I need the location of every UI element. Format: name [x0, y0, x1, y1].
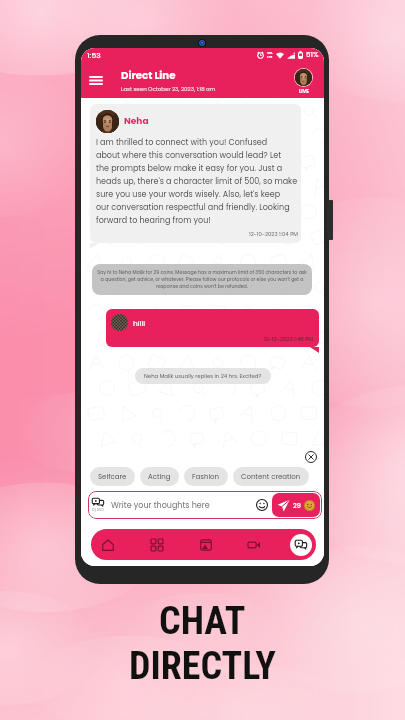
button[interactable]: Fashion: [184, 467, 228, 486]
button[interactable]: Emoji: [256, 499, 268, 511]
staticText: VoL: [267, 51, 273, 55]
staticText: 12-10-2023 1:04 PM: [249, 230, 298, 238]
button[interactable]: Live profile: [294, 68, 313, 95]
staticText: hiiii: [133, 318, 146, 328]
button[interactable]: Close: [305, 451, 317, 463]
staticText: CHAT: [159, 599, 246, 644]
staticText: Write your thoughts here: [111, 500, 256, 511]
staticText: Fashion: [192, 472, 220, 482]
button[interactable]: Video: [241, 532, 267, 558]
staticText: I am thrilled to connect with you! Confu…: [96, 137, 298, 226]
button[interactable]: Neha Malik usually replies in 24 hrs. Ex…: [135, 368, 271, 384]
button[interactable]: Send: [272, 493, 320, 517]
button[interactable]: Content creation: [233, 467, 309, 486]
staticText: Selfcare: [98, 472, 127, 482]
button[interactable]: hiiii: [106, 309, 319, 347]
button[interactable]: Neha: [90, 104, 301, 243]
button[interactable]: Selfcare: [90, 467, 135, 486]
staticText: 0/350: [92, 507, 104, 513]
staticText: Last seen October 23, 2023, 1:18 am: [121, 85, 216, 93]
staticText: Acting: [148, 472, 171, 482]
button[interactable]: Chat: [290, 534, 312, 556]
staticText: DIRECTLY: [129, 644, 276, 689]
staticText: LIVE: [299, 88, 309, 95]
staticText: Neha Malik usually replies in 24 hrs. Ex…: [144, 372, 262, 380]
staticText: LTE: [267, 55, 273, 59]
staticText: Direct Line: [121, 68, 176, 82]
button[interactable]: Home: [95, 532, 121, 558]
staticText: 29: [293, 501, 301, 510]
staticText: 51%: [306, 50, 319, 60]
button[interactable]: Explore: [144, 532, 170, 558]
staticText: Content creation: [241, 472, 301, 482]
staticText: 12-10-2023 1:48 PM: [264, 335, 313, 343]
staticText: 1:53: [87, 50, 101, 60]
staticText: Neha: [124, 115, 149, 128]
button[interactable]: Gallery: [193, 532, 219, 558]
button[interactable]: Acting: [140, 467, 179, 486]
staticText: Say hi to Neha Malik for 29 coins. Messa…: [92, 269, 312, 290]
button[interactable]: Menu: [85, 69, 107, 91]
